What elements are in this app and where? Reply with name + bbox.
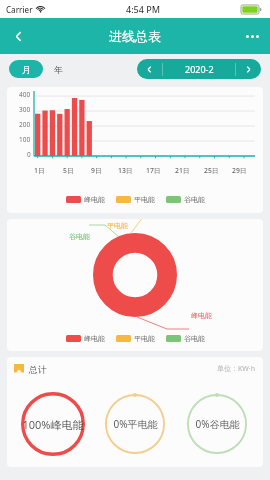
button[interactable]: 峰电能 bbox=[66, 334, 105, 343]
button[interactable]: 平电能 bbox=[116, 195, 155, 204]
staticText: 总计 bbox=[29, 364, 47, 375]
staticText: 峰电能 bbox=[84, 195, 105, 204]
button[interactable]: 月 bbox=[9, 60, 43, 78]
staticText: 400 bbox=[19, 90, 31, 99]
staticText: 100%峰电能 bbox=[22, 417, 84, 432]
button[interactable]: Previous month bbox=[137, 59, 162, 79]
staticText: Carrier bbox=[6, 4, 33, 15]
staticText: 谷电能 bbox=[184, 195, 205, 204]
staticText: 4:54 PM bbox=[126, 3, 160, 15]
button[interactable]: 0%平电能 bbox=[99, 388, 171, 460]
button[interactable]: Back bbox=[0, 18, 36, 54]
button[interactable]: Next month bbox=[236, 59, 261, 79]
button[interactable]: 2020-2 bbox=[163, 59, 235, 79]
button[interactable]: More options bbox=[234, 18, 270, 54]
staticText: 2020-2 bbox=[185, 63, 214, 75]
staticText: 进线总表 bbox=[109, 28, 161, 44]
staticText: 300 bbox=[19, 105, 31, 114]
staticText: 月 bbox=[22, 64, 31, 75]
staticText: 29日 bbox=[232, 166, 247, 175]
staticText: 21日 bbox=[175, 166, 190, 175]
button[interactable]: 谷电能 bbox=[166, 195, 205, 204]
staticText: 9日 bbox=[91, 166, 102, 175]
staticText: 0 bbox=[27, 150, 31, 159]
button[interactable]: 峰电能 bbox=[66, 195, 105, 204]
staticText: 1日 bbox=[34, 166, 45, 175]
staticText: 峰电能 bbox=[191, 311, 212, 320]
staticText: 平电能 bbox=[134, 195, 155, 204]
staticText: 单位：KW·h bbox=[217, 364, 256, 374]
staticText: 100 bbox=[19, 135, 31, 144]
button[interactable]: 100%峰电能 bbox=[17, 388, 89, 460]
staticText: 谷电能 bbox=[184, 334, 205, 343]
staticText: 17日 bbox=[146, 166, 161, 175]
staticText: 0%谷电能 bbox=[195, 417, 240, 431]
staticText: 平电能 bbox=[107, 221, 128, 230]
button[interactable]: 年 bbox=[43, 60, 73, 78]
button[interactable]: 平电能 bbox=[116, 334, 155, 343]
staticText: 年 bbox=[54, 64, 63, 75]
staticText: 谷电能 bbox=[69, 232, 90, 241]
staticText: 平电能 bbox=[134, 334, 155, 343]
staticText: 25日 bbox=[204, 166, 219, 175]
staticText: 0%平电能 bbox=[113, 417, 158, 431]
staticText: 13日 bbox=[118, 166, 133, 175]
button[interactable]: 0%谷电能 bbox=[181, 388, 253, 460]
staticText: 200 bbox=[19, 120, 31, 129]
button[interactable]: 谷电能 bbox=[166, 334, 205, 343]
staticText: 5日 bbox=[63, 166, 74, 175]
staticText: 峰电能 bbox=[84, 334, 105, 343]
